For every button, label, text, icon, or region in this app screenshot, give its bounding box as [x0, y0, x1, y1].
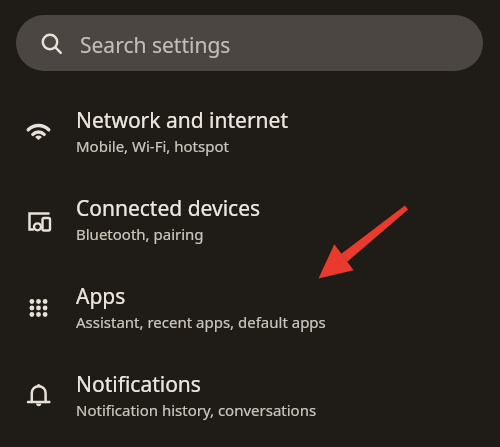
staticText: Assistant, recent apps, default apps [76, 312, 326, 332]
staticText: Notifications [76, 370, 201, 399]
button[interactable]: Connected devices [0, 184, 500, 273]
staticText: Bluetooth, pairing [76, 224, 204, 244]
staticText: Mobile, Wi-Fi, hotspot [76, 136, 229, 156]
staticText: Connected devices [76, 194, 261, 223]
staticText: Notification history, conversations [76, 400, 317, 420]
staticText: Network and internet [76, 106, 288, 135]
button[interactable]: Apps [0, 272, 500, 361]
button[interactable]: Search settings [16, 15, 483, 71]
button[interactable]: Network and internet [0, 96, 500, 185]
button[interactable]: Notifications [0, 360, 500, 447]
staticText: Apps [76, 282, 126, 311]
staticText: Search settings [80, 31, 231, 60]
